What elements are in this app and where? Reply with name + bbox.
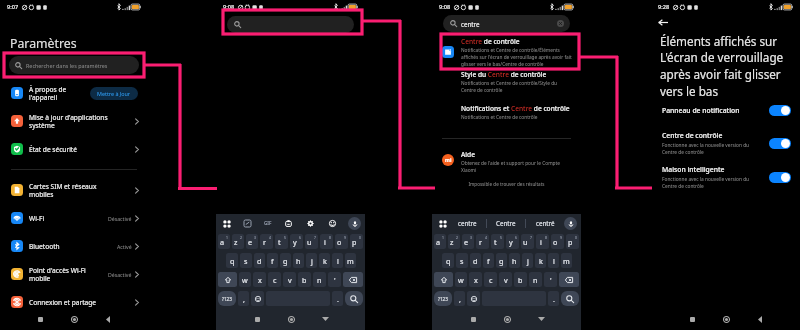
- button[interactable]: f: [483, 253, 494, 268]
- button[interactable]: c: [484, 272, 497, 287]
- button[interactable]: Stickers: [282, 217, 295, 230]
- button[interactable]: k: [535, 253, 546, 268]
- button[interactable]: j: [306, 253, 317, 268]
- button[interactable]: c: [268, 272, 281, 287]
- button[interactable]: Clipboard: [241, 217, 254, 230]
- button[interactable]: Backspace: [559, 272, 579, 287]
- button[interactable]: Back: [655, 14, 671, 30]
- button[interactable]: Clear search: [557, 20, 564, 27]
- button[interactable]: ?123: [434, 291, 452, 306]
- button[interactable]: a: [218, 234, 230, 249]
- button[interactable]: u: [521, 234, 534, 249]
- button[interactable]: Style du Centre de contrôle: [432, 70, 581, 94]
- button[interactable]: o: [551, 234, 564, 249]
- button[interactable]: l: [548, 253, 559, 268]
- button[interactable]: i: [536, 234, 549, 249]
- button[interactable]: v: [283, 272, 296, 287]
- button[interactable]: i: [320, 234, 333, 249]
- button[interactable]: Back: [534, 312, 548, 326]
- button[interactable]: x: [253, 272, 266, 287]
- button[interactable]: r: [476, 234, 489, 249]
- button[interactable]: Emoji: [467, 291, 480, 306]
- button[interactable]: Back: [101, 312, 115, 326]
- button[interactable]: h: [293, 253, 304, 268]
- button[interactable]: z: [448, 234, 460, 249]
- button[interactable]: Mettre à Jour: [90, 87, 138, 100]
- button[interactable]: Shift: [434, 272, 453, 287]
- button[interactable]: Home: [67, 312, 81, 326]
- button[interactable]: Bluetooth: [0, 232, 148, 260]
- button[interactable]: Search: [561, 291, 579, 306]
- button[interactable]: Emoji: [251, 291, 264, 306]
- button[interactable]: z: [232, 234, 244, 249]
- button[interactable]: .: [548, 291, 559, 306]
- button[interactable]: d: [470, 253, 481, 268]
- button[interactable]: Mise à jour d'applications système: [0, 107, 148, 135]
- button[interactable]: p: [350, 234, 363, 249]
- button[interactable]: t: [275, 234, 288, 249]
- button[interactable]: l: [332, 253, 343, 268]
- button[interactable]: Home: [500, 312, 514, 326]
- button[interactable]: centré: [526, 214, 564, 232]
- button[interactable]: p: [566, 234, 579, 249]
- button[interactable]: y: [290, 234, 303, 249]
- button[interactable]: GIF: [263, 219, 273, 227]
- button[interactable]: Search: [345, 291, 363, 306]
- button[interactable]: w: [455, 272, 467, 287]
- button[interactable]: Centre de contrôle: [432, 37, 581, 68]
- button[interactable]: s: [240, 253, 252, 268]
- button[interactable]: Toggle Centre de contrôle: [769, 138, 791, 149]
- button[interactable]: s: [456, 253, 468, 268]
- button[interactable]: ,: [238, 291, 249, 306]
- button[interactable]: Back: [318, 312, 332, 326]
- button[interactable]: Point d'accès Wi-Fi mobile: [0, 260, 148, 288]
- button[interactable]: Maison intelligente: [651, 165, 800, 189]
- button[interactable]: f: [267, 253, 278, 268]
- button[interactable]: h: [509, 253, 520, 268]
- button[interactable]: t: [491, 234, 504, 249]
- button[interactable]: À propos de l'appareil: [0, 79, 148, 107]
- button[interactable]: g: [280, 253, 291, 268]
- button[interactable]: q: [442, 253, 454, 268]
- button[interactable]: n: [313, 272, 326, 287]
- button[interactable]: n: [529, 272, 542, 287]
- button[interactable]: b: [514, 272, 527, 287]
- button[interactable]: Connexion et partage: [0, 288, 148, 316]
- button[interactable]: ?123: [218, 291, 236, 306]
- button[interactable]: v: [499, 272, 512, 287]
- button[interactable]: Recents: [250, 312, 264, 326]
- button[interactable]: a: [434, 234, 446, 249]
- button[interactable]: j: [522, 253, 533, 268]
- button[interactable]: e: [462, 234, 474, 249]
- button[interactable]: centre: [443, 15, 570, 32]
- button[interactable]: Apps: [220, 217, 233, 230]
- button[interactable]: Rechercher dans les paramètres: [9, 56, 139, 74]
- button[interactable]: r: [260, 234, 273, 249]
- button[interactable]: m: [345, 253, 356, 268]
- button[interactable]: x: [469, 272, 482, 287]
- button[interactable]: Panneau de notification: [651, 105, 800, 116]
- button[interactable]: b: [298, 272, 311, 287]
- button[interactable]: État de sécurité: [0, 135, 148, 163]
- button[interactable]: d: [254, 253, 265, 268]
- button[interactable]: u: [305, 234, 318, 249]
- button[interactable]: ,: [454, 291, 465, 306]
- button[interactable]: Wi-Fi: [0, 204, 148, 232]
- button[interactable]: Home: [719, 312, 733, 326]
- button[interactable]: Back: [753, 312, 767, 326]
- button[interactable]: y: [506, 234, 519, 249]
- button[interactable]: m: [561, 253, 572, 268]
- button[interactable]: Toggle Panneau de notification: [769, 105, 791, 116]
- button[interactable]: o: [335, 234, 348, 249]
- button[interactable]: Recents: [33, 312, 47, 326]
- button[interactable]: e: [246, 234, 258, 249]
- button[interactable]: Emoji: [326, 217, 339, 230]
- button[interactable]: Settings: [304, 217, 317, 230]
- button[interactable]: mi: [432, 150, 581, 174]
- button[interactable]: Backspace: [343, 272, 363, 287]
- button[interactable]: ': [328, 272, 341, 287]
- button[interactable]: Voice input: [564, 217, 577, 230]
- button[interactable]: g: [496, 253, 507, 268]
- button[interactable]: q: [226, 253, 238, 268]
